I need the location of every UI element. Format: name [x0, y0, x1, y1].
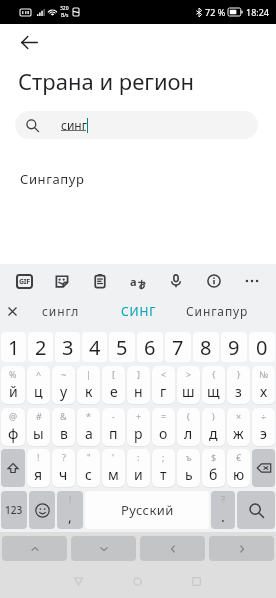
button[interactable]: <: [152, 366, 175, 404]
button[interactable]: ~: [52, 366, 75, 404]
button[interactable]: :: [127, 449, 150, 487]
button[interactable]: ×: [227, 408, 250, 446]
button[interactable]: Info: [195, 268, 233, 294]
button[interactable]: @: [1, 408, 25, 446]
button[interactable]: ?: [52, 449, 75, 487]
button[interactable]: =: [152, 408, 175, 446]
staticText: у: [60, 382, 68, 401]
button[interactable]: Сингапур: [0, 163, 276, 195]
button[interactable]: ъ: [177, 449, 200, 487]
staticText: Русский: [121, 501, 174, 519]
staticText: |: [86, 368, 91, 380]
button[interactable]: ': [102, 449, 125, 487]
button[interactable]: 9: [221, 332, 247, 362]
staticText: {: [212, 368, 216, 380]
button[interactable]: +: [127, 408, 150, 446]
staticText: #: [36, 410, 42, 422]
staticText: 18:24: [246, 6, 270, 18]
staticText: ~: [61, 368, 67, 380]
button[interactable]: Translate: [119, 268, 157, 294]
staticText: в: [60, 424, 68, 443]
button[interactable]: СИНГ: [100, 298, 178, 324]
button[interactable]: Stickers: [43, 268, 81, 294]
button[interactable]: GIF: [6, 268, 43, 294]
button[interactable]: Emoji: [29, 491, 55, 529]
button[interactable]: Move right: [209, 536, 274, 561]
staticText: к: [85, 382, 93, 401]
button[interactable]: ": [77, 449, 100, 487]
staticText: ,: [68, 507, 72, 526]
button[interactable]: Move left: [140, 536, 205, 561]
button[interactable]: 0: [249, 332, 275, 362]
button[interactable]: $: [202, 449, 225, 487]
staticText: ю: [233, 465, 245, 484]
button[interactable]: More options: [233, 268, 271, 294]
staticText: д: [209, 424, 218, 443]
button[interactable]: ^: [27, 366, 50, 404]
button[interactable]: ): [202, 408, 225, 446]
button[interactable]: Search: [237, 491, 275, 529]
button[interactable]: 5: [109, 332, 135, 362]
staticText: ': [112, 451, 115, 463]
staticText: 2: [35, 334, 47, 361]
staticText: ы: [33, 424, 44, 443]
button[interactable]: &: [52, 408, 75, 446]
button[interactable]: Русский: [85, 491, 209, 529]
staticText: :: [137, 451, 140, 463]
button[interactable]: Clipboard: [81, 268, 119, 294]
button[interactable]: !: [57, 491, 83, 529]
button[interactable]: 2: [28, 332, 53, 362]
staticText: B/s: [61, 12, 69, 19]
button[interactable]: [: [102, 366, 125, 404]
button[interactable]: -: [102, 408, 125, 446]
button[interactable]: Move down: [71, 536, 136, 561]
staticText: Сингапур: [186, 303, 249, 319]
button[interactable]: 123: [1, 491, 27, 529]
button[interactable]: Сингапур: [178, 298, 256, 324]
button[interactable]: сингл: [22, 298, 100, 324]
button[interactable]: {: [202, 366, 225, 404]
button[interactable]: ]: [127, 366, 150, 404]
button[interactable]: Backspace: [252, 449, 275, 487]
button[interactable]: Shift: [1, 449, 25, 487]
staticText: a: [130, 274, 137, 289]
button[interactable]: 1: [1, 332, 26, 362]
button[interactable]: Move up: [2, 536, 67, 561]
staticText: ×: [236, 410, 242, 422]
button[interactable]: Voice input: [157, 268, 195, 294]
button[interactable]: (: [177, 408, 200, 446]
button[interactable]: Back: [13, 26, 45, 58]
button[interactable]: синг: [15, 111, 258, 139]
button[interactable]: 4: [82, 332, 107, 362]
button[interactable]: |: [77, 366, 100, 404]
staticText: 320: [60, 5, 69, 12]
button[interactable]: }: [227, 366, 250, 404]
button[interactable]: 7: [165, 332, 191, 362]
button[interactable]: №: [252, 366, 275, 404]
button[interactable]: Recent apps: [179, 564, 213, 598]
button[interactable]: !: [27, 449, 50, 487]
button[interactable]: ÷: [252, 408, 275, 446]
button[interactable]: #: [27, 408, 50, 446]
staticText: ч: [59, 465, 68, 484]
staticText: ь: [185, 465, 193, 484]
button[interactable]: €: [227, 449, 250, 487]
button[interactable]: 8: [193, 332, 219, 362]
staticText: <: [161, 368, 167, 380]
staticText: ÷: [261, 410, 267, 422]
button[interactable]: 6: [137, 332, 163, 362]
button[interactable]: ?: [211, 491, 235, 529]
button[interactable]: ;: [152, 449, 175, 487]
staticText: т: [160, 465, 167, 484]
staticText: л: [184, 424, 193, 443]
button[interactable]: Close suggestions: [0, 298, 24, 324]
button[interactable]: %: [1, 366, 25, 404]
staticText: Сингапур: [20, 170, 85, 188]
button[interactable]: *: [77, 408, 100, 446]
staticText: 3: [62, 334, 74, 361]
button[interactable]: >: [177, 366, 200, 404]
staticText: ": [87, 451, 91, 463]
button[interactable]: 3: [55, 332, 80, 362]
